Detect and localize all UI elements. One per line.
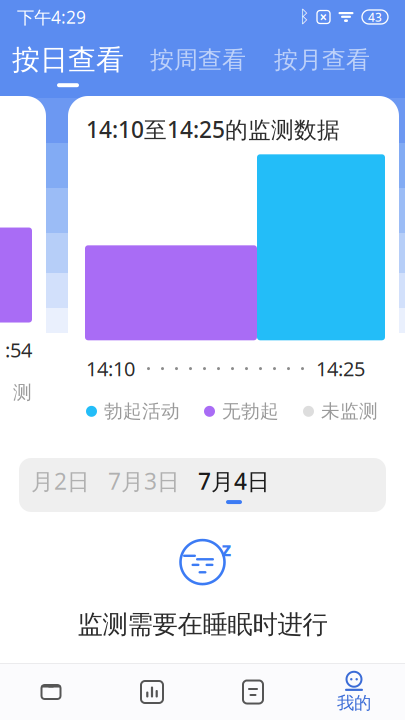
staticText: 下午4:29 [17, 5, 86, 28]
staticText: 14:25 [316, 355, 365, 382]
staticText: 按月查看 [274, 45, 370, 75]
button[interactable]: 我的 [303, 664, 404, 720]
button[interactable]: 报告 [202, 664, 303, 720]
staticText: × [319, 8, 327, 26]
staticText: 7月3日 [108, 466, 180, 496]
button[interactable]: 按日查看 [0, 43, 136, 87]
staticText: 监测需要在睡眠时进行 [77, 609, 327, 640]
staticText: 43 [368, 9, 382, 25]
staticText: 14:10 [86, 355, 135, 382]
staticText: 按周查看 [150, 45, 246, 75]
staticText: z [221, 535, 231, 562]
staticText: 我的 [337, 692, 371, 714]
button[interactable]: 按月查看 [260, 45, 384, 85]
staticText: 7月4日 [198, 466, 270, 496]
button[interactable]: 按周查看 [136, 45, 260, 85]
staticText: 按日查看 [12, 43, 124, 77]
staticText: ᛒ [299, 8, 309, 25]
button[interactable]: 7月4日 [198, 460, 270, 510]
staticText: 测 [13, 381, 32, 404]
button[interactable]: 月2日 [31, 460, 90, 510]
button[interactable]: 数据 [101, 664, 202, 720]
button[interactable]: 首页 [0, 664, 101, 720]
staticText: 勃起活动 [104, 400, 180, 423]
staticText: 月2日 [31, 466, 90, 496]
button[interactable]: 7月3日 [108, 460, 180, 510]
staticText: 无勃起 [222, 400, 279, 423]
staticText: 未监测 [321, 400, 378, 423]
staticText: 14:10至14:25的监测数据 [86, 114, 340, 144]
staticText: :54 [5, 336, 32, 363]
